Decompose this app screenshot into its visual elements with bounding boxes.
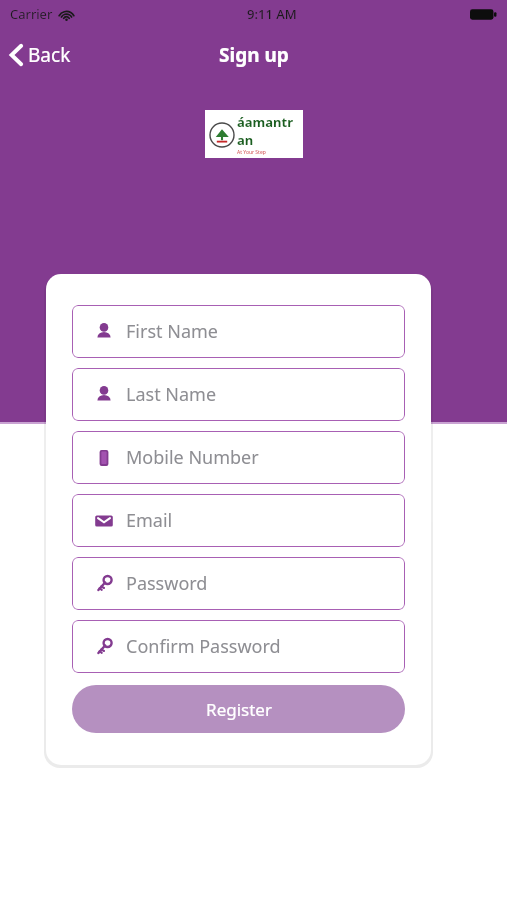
staticText: Last Name bbox=[126, 382, 217, 407]
staticText: Password bbox=[126, 571, 208, 596]
button[interactable]: Password bbox=[72, 557, 405, 610]
other: Wi-Fi bbox=[58, 8, 75, 21]
button[interactable]: Back bbox=[0, 38, 83, 72]
staticText: Email bbox=[126, 508, 173, 533]
staticText: Sign up bbox=[219, 42, 289, 68]
button[interactable]: Last Name bbox=[72, 368, 405, 421]
button[interactable]: Confirm Password bbox=[72, 620, 405, 673]
button[interactable]: Mobile Number bbox=[72, 431, 405, 484]
staticText: At Your Step bbox=[237, 149, 266, 156]
button[interactable]: First Name bbox=[72, 305, 405, 358]
button[interactable]: Email bbox=[72, 494, 405, 547]
staticText: Confirm Password bbox=[126, 634, 281, 659]
staticText: Carrier bbox=[10, 5, 53, 23]
staticText: First Name bbox=[126, 319, 218, 344]
staticText: 9:11 AM bbox=[247, 5, 297, 23]
staticText: Mobile Number bbox=[126, 445, 259, 470]
staticText: Register bbox=[206, 698, 272, 721]
staticText: Back bbox=[28, 42, 71, 68]
button[interactable]: Register bbox=[72, 685, 405, 733]
staticText: áamantran bbox=[237, 113, 299, 149]
other: Battery full bbox=[470, 8, 497, 21]
